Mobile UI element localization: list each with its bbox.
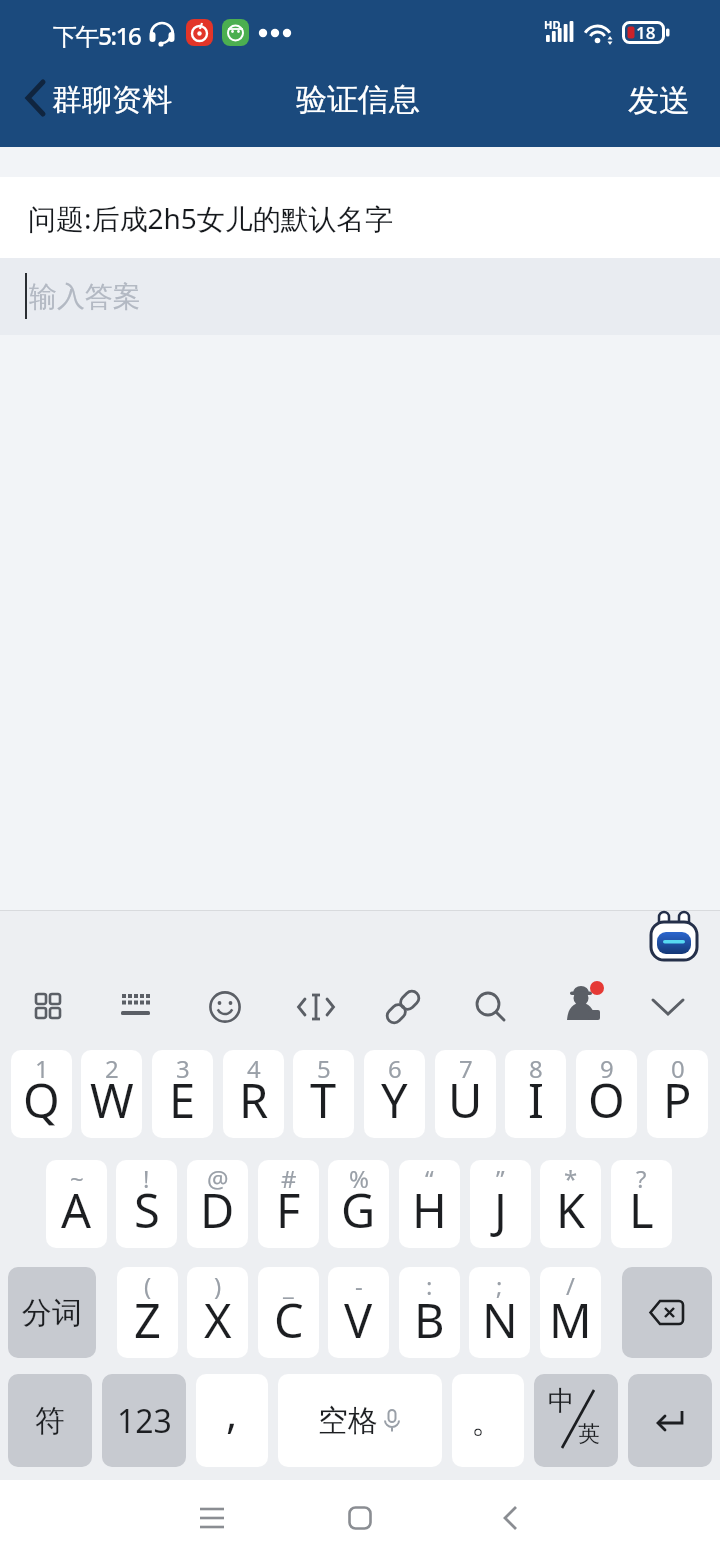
button[interactable]: % [328,1160,389,1248]
staticText: B [414,1288,445,1352]
button[interactable]: 8 [505,1050,566,1138]
button[interactable]: 中 [534,1374,618,1467]
staticText: N [482,1288,518,1352]
button[interactable]: 6 [364,1050,425,1138]
staticText: ! [143,1162,150,1195]
staticText: E [169,1068,196,1132]
button[interactable]: / [540,1267,601,1358]
staticText: * [564,1162,578,1195]
button[interactable] [24,80,48,116]
staticText: 下午5:16 [53,19,141,52]
button[interactable]: 。 [452,1374,524,1467]
button[interactable]: ! [116,1160,177,1248]
staticText: O [588,1068,625,1132]
staticText: 7 [459,1052,473,1085]
button[interactable]: _ [258,1267,319,1358]
button[interactable] [622,1267,712,1358]
staticText: 18 [636,21,656,44]
button[interactable] [208,990,242,1024]
staticText: 空格 [318,1402,378,1440]
staticText: 8 [529,1052,543,1085]
staticText: F [276,1178,301,1242]
staticText: 问题:后成2h5女儿的默认名字 [28,199,393,237]
button[interactable] [348,1505,372,1531]
button[interactable]: ) [187,1267,248,1358]
button[interactable]: 3 [152,1050,213,1138]
staticText: % [349,1162,369,1195]
staticText: G [341,1178,376,1242]
button[interactable]: : [399,1267,460,1358]
staticText: Z [134,1288,161,1352]
button[interactable]: ” [470,1160,531,1248]
button[interactable] [198,1505,226,1531]
button[interactable] [383,987,423,1027]
button[interactable] [651,998,685,1018]
button[interactable]: ( [117,1267,178,1358]
button[interactable] [34,992,62,1020]
staticText: 英 [578,1420,600,1448]
staticText: U [448,1068,483,1132]
button[interactable]: , [196,1374,268,1467]
button[interactable] [474,990,508,1024]
button[interactable]: 群聊资料 [52,81,172,119]
staticText: ? [636,1162,647,1195]
button[interactable]: ; [469,1267,530,1358]
staticText: _ [283,1269,294,1302]
staticText: 中 [548,1384,575,1418]
button[interactable]: 发送 [628,81,690,120]
staticText: 9 [600,1052,614,1085]
staticText: H [412,1178,447,1242]
button[interactable]: 分词 [8,1267,96,1358]
staticText: D [200,1178,235,1242]
staticText: R [239,1068,269,1132]
staticText: J [494,1178,507,1242]
button[interactable]: 符 [8,1374,92,1467]
button[interactable] [502,1505,520,1531]
staticText: C [274,1288,304,1352]
button[interactable]: 2 [81,1050,142,1138]
button[interactable]: 4 [223,1050,284,1138]
button[interactable] [121,994,151,1018]
button[interactable]: # [258,1160,319,1248]
staticText: M [549,1288,592,1352]
staticText: , [226,1384,238,1441]
staticText: 0 [671,1052,685,1085]
button[interactable]: ? [611,1160,672,1248]
button[interactable] [648,908,700,962]
staticText: ; [496,1269,503,1302]
staticText: 123 [117,1399,172,1443]
staticText: Y [381,1068,408,1132]
staticText: - [355,1269,363,1302]
button[interactable] [297,992,335,1022]
button[interactable]: 9 [576,1050,637,1138]
staticText: 符 [35,1402,65,1440]
staticText: ( [144,1269,152,1302]
staticText: L [629,1178,654,1242]
button[interactable]: ~ [46,1160,107,1248]
staticText: 4 [247,1052,261,1085]
staticText: W [90,1068,134,1132]
staticText: 3 [176,1052,190,1085]
staticText: I [528,1068,544,1132]
button[interactable]: 输入答案 [0,258,720,335]
staticText: V [344,1288,373,1352]
button[interactable]: @ [187,1160,248,1248]
staticText: 验证信息 [296,80,420,119]
staticText: S [134,1178,160,1242]
button[interactable]: * [540,1160,601,1248]
button[interactable]: “ [399,1160,460,1248]
button[interactable] [564,982,606,1024]
button[interactable]: 0 [647,1050,708,1138]
button[interactable]: 空格 [278,1374,442,1467]
button[interactable]: 7 [435,1050,496,1138]
button[interactable] [628,1374,712,1467]
staticText: P [663,1068,692,1132]
staticText: Q [23,1068,60,1132]
staticText: A [61,1178,92,1242]
staticText: 分词 [22,1294,82,1332]
button[interactable]: 1 [11,1050,72,1138]
button[interactable]: 123 [102,1374,186,1467]
button[interactable]: 5 [293,1050,354,1138]
staticText: 1 [35,1052,49,1085]
button[interactable]: - [328,1267,389,1358]
